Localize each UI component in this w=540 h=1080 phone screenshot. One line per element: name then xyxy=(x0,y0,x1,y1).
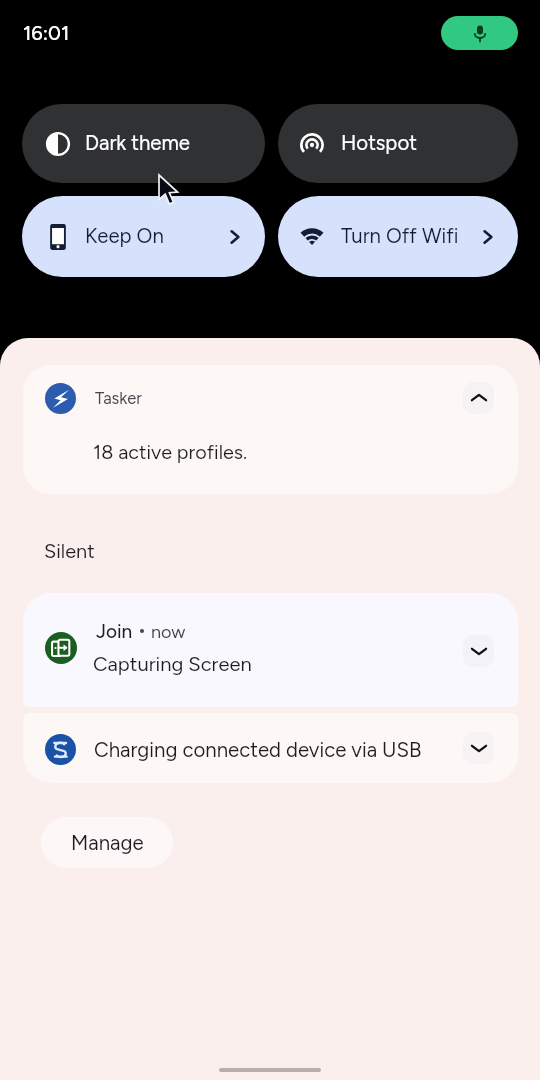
button[interactable]: Microphone in use xyxy=(441,16,518,50)
button[interactable]: Expand Join notification xyxy=(463,635,494,667)
button[interactable]: Join xyxy=(23,593,518,707)
staticText: now xyxy=(151,621,186,643)
button[interactable]: Tasker xyxy=(23,365,518,494)
button[interactable]: Expand USB notification xyxy=(463,732,494,764)
staticText: Manage xyxy=(71,831,144,855)
staticText: Silent xyxy=(44,539,95,563)
other: More Keep On settings xyxy=(230,230,240,244)
staticText: Keep On xyxy=(85,224,164,248)
staticText: 16:01 xyxy=(23,21,70,45)
button[interactable]: Collapse xyxy=(463,382,494,414)
staticText: Tasker xyxy=(95,388,142,408)
other: More Turn Off Wifi settings xyxy=(483,230,493,244)
button[interactable]: Manage xyxy=(41,817,173,868)
staticText: Charging connected device via USB xyxy=(94,738,422,762)
button[interactable]: Turn Off Wifi xyxy=(278,196,518,277)
button[interactable]: Hotspot xyxy=(278,104,518,183)
button[interactable]: Charging connected device via USB xyxy=(23,713,518,783)
staticText: Join xyxy=(96,620,133,643)
button[interactable]: Keep On xyxy=(22,196,265,277)
button[interactable]: Dark theme xyxy=(22,104,265,183)
staticText: Hotspot xyxy=(341,131,417,155)
staticText: 18 active profiles. xyxy=(93,440,248,464)
staticText: Capturing Screen xyxy=(93,652,252,676)
staticText: Dark theme xyxy=(85,131,190,155)
staticText: Turn Off Wifi xyxy=(341,224,459,248)
